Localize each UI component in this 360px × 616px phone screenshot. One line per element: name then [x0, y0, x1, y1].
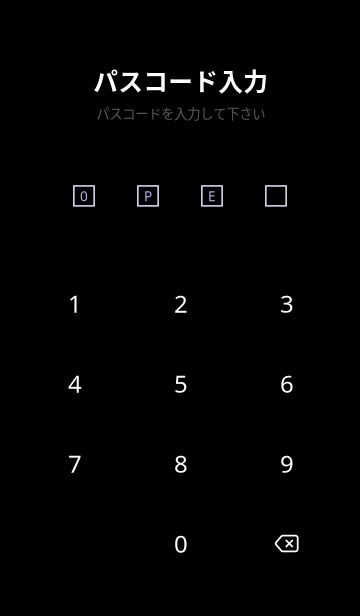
button[interactable]: 2	[128, 263, 234, 343]
staticText: 1	[68, 287, 82, 320]
staticText: 3	[280, 287, 294, 320]
staticText: E	[208, 187, 216, 205]
button[interactable]: 0	[128, 503, 234, 583]
button[interactable]: 8	[128, 423, 234, 503]
button[interactable]: 7	[22, 423, 128, 503]
staticText: パスコードを入力して下さい	[96, 103, 265, 123]
button[interactable]: 9	[234, 423, 340, 503]
staticText: 8	[174, 447, 188, 480]
staticText: 6	[280, 367, 294, 400]
button[interactable]: 5	[128, 343, 234, 423]
staticText: パスコード入力	[93, 62, 268, 98]
staticText: 0	[80, 187, 88, 205]
button[interactable]: 3	[234, 263, 340, 343]
button[interactable]: 1	[22, 263, 128, 343]
staticText: P	[144, 187, 152, 205]
staticText: 7	[68, 447, 82, 480]
button[interactable]: 6	[234, 343, 340, 423]
staticText: 4	[68, 367, 82, 400]
staticText: 5	[174, 367, 188, 400]
button[interactable]: 4	[22, 343, 128, 423]
staticText: 0	[174, 527, 188, 560]
staticText: 9	[280, 447, 294, 480]
button[interactable]: Delete	[233, 503, 339, 583]
staticText: 2	[174, 287, 188, 320]
